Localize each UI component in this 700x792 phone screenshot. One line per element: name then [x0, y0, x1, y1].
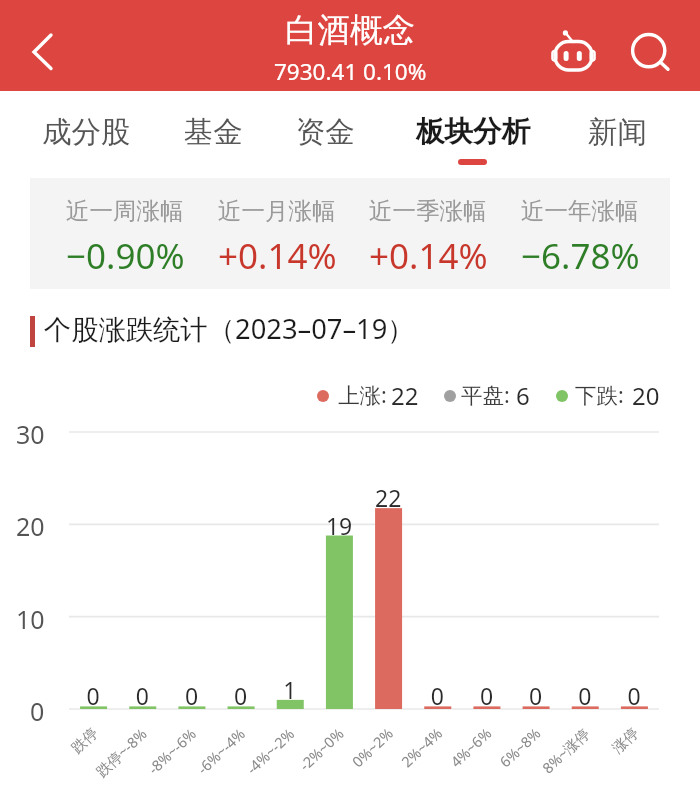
button[interactable]: 资金 [293, 91, 357, 178]
button[interactable]: Search [613, 0, 689, 91]
button[interactable] [552, 386, 628, 408]
button[interactable]: 基金 [181, 91, 245, 178]
staticText: 板块分析 [416, 114, 530, 150]
staticText: 7930.41 0.10% [274, 56, 427, 87]
staticText: −6.78% [521, 232, 640, 280]
button[interactable]: Back [0, 0, 76, 91]
staticText: 基金 [184, 114, 243, 151]
staticText: −0.90% [66, 232, 185, 280]
staticText: 平盘: [461, 380, 510, 409]
button[interactable]: AI assistant [538, 0, 608, 91]
staticText: 新闻 [588, 114, 647, 151]
button[interactable]: 新闻 [585, 91, 649, 178]
staticText: 6 [516, 379, 530, 412]
staticText: 20 [632, 379, 660, 412]
staticText: 个股涨跌统计（2023–07–19） [44, 310, 415, 347]
staticText: 下跌: [575, 380, 624, 409]
staticText: 近一年涨幅 [521, 196, 639, 226]
staticText: 上涨: [338, 380, 387, 409]
staticText: 近一月涨幅 [218, 196, 336, 226]
staticText: +0.14% [218, 232, 337, 280]
button[interactable] [313, 386, 389, 408]
button[interactable]: 板块分析 [412, 91, 533, 178]
staticText: 近一季涨幅 [369, 196, 487, 226]
staticText: 22 [391, 379, 419, 412]
staticText: 近一周涨幅 [66, 196, 184, 226]
button[interactable]: 成分股 [38, 91, 134, 178]
button[interactable] [440, 386, 506, 408]
staticText: 白酒概念 [285, 10, 415, 51]
staticText: 成分股 [42, 114, 131, 151]
staticText: +0.14% [369, 232, 488, 280]
staticText: 资金 [296, 114, 355, 151]
